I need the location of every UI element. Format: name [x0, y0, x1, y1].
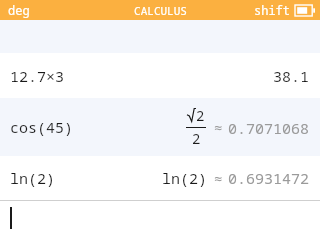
button[interactable]: ln(2)	[0, 156, 320, 200]
other: Battery	[295, 5, 315, 16]
staticText: ≈	[214, 169, 223, 188]
staticText: 2	[192, 129, 201, 148]
staticText: ln(2)	[10, 168, 56, 188]
button[interactable]: deg	[0, 2, 36, 18]
staticText: shift	[254, 2, 291, 18]
staticText: CALCULUS	[134, 3, 187, 18]
staticText: deg	[8, 2, 30, 18]
staticText: 0.6931472	[228, 168, 310, 188]
button[interactable]: cos(45)	[0, 98, 320, 156]
button[interactable]	[0, 201, 320, 240]
staticText: ln(2)	[162, 168, 208, 188]
staticText: 12.7×3	[10, 66, 65, 86]
button[interactable]: 12.7×3	[0, 53, 320, 98]
staticText: cos(45)	[10, 117, 74, 137]
staticText: 38.1	[273, 66, 310, 86]
staticText: ≈	[214, 118, 223, 137]
staticText: 0.7071068	[228, 118, 310, 138]
staticText: 2	[196, 106, 205, 125]
